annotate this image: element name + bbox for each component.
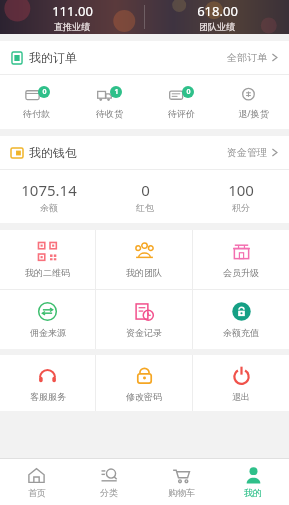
staticText: 618.00 <box>197 2 238 20</box>
staticText: 会员升级 <box>223 267 259 278</box>
staticText: 余额充值 <box>223 327 259 338</box>
button[interactable]: 0 <box>0 75 73 129</box>
button[interactable]: 1075.14 <box>0 170 97 223</box>
staticText: 111.00 <box>52 2 93 20</box>
button[interactable]: 首页 <box>0 459 73 505</box>
staticText: 1075.14 <box>21 180 77 200</box>
staticText: 我的 <box>244 487 262 498</box>
button[interactable]: 100 <box>193 170 289 223</box>
button[interactable]: 会员升级 <box>193 230 289 289</box>
staticText: 资金记录 <box>126 327 162 338</box>
staticText: 首页 <box>28 487 46 498</box>
staticText: 佣金来源 <box>30 327 66 338</box>
button[interactable]: 佣金来源 <box>0 290 95 349</box>
button[interactable]: 1 <box>73 75 145 129</box>
button[interactable]: 资金记录 <box>96 290 192 349</box>
button[interactable]: 我的团队 <box>96 230 192 289</box>
button[interactable]: 客服服务 <box>0 355 95 411</box>
button[interactable]: 我的 <box>217 459 289 505</box>
button[interactable]: 购物车 <box>145 459 217 505</box>
staticText: 待收货 <box>96 108 123 119</box>
button[interactable]: 我的钱包 <box>0 136 289 169</box>
staticText: 资金管理 <box>227 146 267 159</box>
button[interactable]: 退出 <box>193 355 289 411</box>
staticText: 0 <box>141 180 150 200</box>
staticText: 客服服务 <box>30 391 66 402</box>
staticText: 我的钱包 <box>29 145 77 160</box>
staticText: 团队业绩 <box>199 21 235 32</box>
button[interactable]: 我的二维码 <box>0 230 95 289</box>
staticText: 0 <box>42 87 47 97</box>
staticText: 余额 <box>40 202 58 213</box>
staticText: 全部订单 <box>227 51 267 64</box>
button[interactable]: 0 <box>145 75 217 129</box>
button[interactable]: 修改密码 <box>96 355 192 411</box>
staticText: 退出 <box>232 391 250 402</box>
staticText: 退/换货 <box>238 107 269 119</box>
staticText: 100 <box>228 180 254 200</box>
staticText: 修改密码 <box>126 391 162 402</box>
button[interactable]: 退/换货 <box>217 75 289 129</box>
staticText: 直推业绩 <box>54 21 90 32</box>
staticText: 待付款 <box>23 108 50 119</box>
button[interactable]: 分类 <box>73 459 145 505</box>
staticText: 积分 <box>232 202 250 213</box>
staticText: 0 <box>186 87 191 97</box>
button[interactable]: 我的订单 <box>0 41 289 74</box>
button[interactable]: 0 <box>97 170 193 223</box>
staticText: 1 <box>114 87 119 97</box>
staticText: 我的订单 <box>29 50 77 65</box>
staticText: 我的团队 <box>126 267 162 278</box>
button[interactable]: 余额充值 <box>193 290 289 349</box>
staticText: 分类 <box>100 487 118 498</box>
staticText: 购物车 <box>168 487 195 498</box>
staticText: 我的二维码 <box>25 267 70 278</box>
staticText: 待评价 <box>168 108 195 119</box>
staticText: 红包 <box>136 202 154 213</box>
